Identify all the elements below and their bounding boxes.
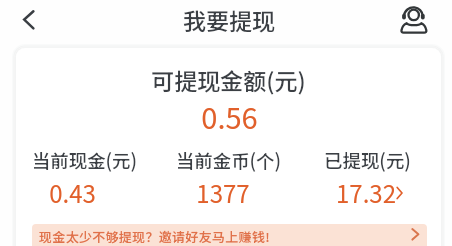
staticText: 17.32 [336,175,396,210]
staticText: 已提现(元) [297,147,438,174]
staticText: 0.56 [17,95,441,137]
button[interactable]: 现金太少不够提现？邀请好友马上赚钱! [32,224,427,246]
button[interactable]: Back [8,0,50,42]
staticText: 我要提现 [3,3,452,36]
button[interactable]: 当前现金(元) [16,147,155,182]
button[interactable]: 当前金币(个) [158,147,299,182]
button[interactable]: 已提现(元) [297,147,438,182]
staticText: 当前现金(元) [16,147,155,174]
staticText: 可提现金额(元) [16,63,441,96]
staticText: 0.43 [49,175,96,210]
staticText: 现金太少不够提现？邀请好友马上赚钱! [39,227,270,246]
button[interactable]: Customer service [396,0,432,36]
staticText: 1377 [196,175,250,210]
staticText: 当前金币(个) [158,147,299,174]
